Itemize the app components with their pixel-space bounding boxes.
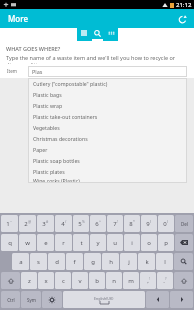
staticText: Sym xyxy=(27,297,36,303)
button[interactable]: 6 xyxy=(90,215,106,232)
button[interactable]: 2 xyxy=(19,215,36,232)
button[interactable]: i xyxy=(124,234,140,251)
staticText: Plastic wrap xyxy=(33,102,63,109)
button[interactable]: List xyxy=(77,28,90,41)
staticText: o xyxy=(147,239,151,247)
staticText: i xyxy=(131,239,133,247)
staticText: / xyxy=(65,219,67,224)
button[interactable]: Shift xyxy=(1,272,20,289)
button[interactable] xyxy=(175,234,193,251)
staticText: f xyxy=(73,258,76,266)
button[interactable]: r xyxy=(55,234,72,251)
staticText: 4 xyxy=(61,220,65,228)
staticText: t xyxy=(80,239,83,247)
button[interactable]: y xyxy=(90,234,106,251)
button[interactable]: t xyxy=(73,234,89,251)
button[interactable]: 4 xyxy=(55,215,72,232)
button[interactable]: p xyxy=(158,234,174,251)
staticText: ~ xyxy=(10,219,13,224)
button[interactable]: Ctrl xyxy=(1,291,20,308)
staticText: x xyxy=(44,277,48,285)
staticText: p xyxy=(164,239,168,247)
staticText: Vegetables xyxy=(33,124,60,131)
button[interactable]: j xyxy=(120,253,137,270)
button[interactable]: Sym xyxy=(21,291,41,308)
staticText: Ctrl xyxy=(7,297,15,303)
button[interactable]: h xyxy=(102,253,119,270)
button[interactable]: u xyxy=(107,234,123,251)
button[interactable]: k xyxy=(138,253,155,270)
staticText: e xyxy=(44,239,48,247)
staticText: ( xyxy=(150,219,152,224)
button[interactable]: Christmas decorations xyxy=(28,133,187,144)
button[interactable]: Cutlery ("compostable" plastic) xyxy=(28,78,187,89)
button[interactable]: Search xyxy=(90,28,104,41)
button[interactable]: Plastic bags xyxy=(28,89,187,100)
staticText: , xyxy=(147,277,149,285)
button[interactable]: Del xyxy=(175,215,193,232)
button[interactable]: Plastic take-out containers xyxy=(28,111,187,122)
button[interactable]: , xyxy=(140,272,156,289)
button[interactable]: Settings xyxy=(42,291,62,308)
button[interactable]: More options xyxy=(104,28,118,41)
staticText: % xyxy=(82,219,85,224)
button[interactable]: 7 xyxy=(107,215,123,232)
button[interactable]: m xyxy=(123,272,139,289)
button[interactable]: Space xyxy=(63,291,145,308)
button[interactable]: x xyxy=(38,272,54,289)
button[interactable]: f xyxy=(66,253,83,270)
button[interactable]: Vegetables xyxy=(28,122,187,133)
button[interactable]: Plastic plates xyxy=(28,166,187,177)
button[interactable]: Plastic wrap xyxy=(28,100,187,111)
staticText: @ xyxy=(28,219,32,224)
staticText: 8 xyxy=(129,220,133,228)
button[interactable]: 3 xyxy=(37,215,54,232)
staticText: 2 xyxy=(24,220,28,228)
button[interactable]: q xyxy=(1,234,18,251)
button[interactable]: Wine corks (Plastic) xyxy=(28,177,187,183)
staticText: Cutlery ("compostable" plastic) xyxy=(33,80,108,87)
button[interactable]: Left xyxy=(146,291,169,308)
button[interactable]: Right xyxy=(170,291,193,308)
staticText: 0 xyxy=(163,220,167,228)
button[interactable]: l xyxy=(156,253,173,270)
button[interactable]: o xyxy=(141,234,157,251)
staticText: Item xyxy=(7,68,17,74)
button[interactable]: . xyxy=(157,272,173,289)
button[interactable]: v xyxy=(72,272,88,289)
staticText: WHAT GOES WHERE? xyxy=(6,45,61,52)
button[interactable]: n xyxy=(106,272,122,289)
staticText: Del xyxy=(181,221,188,227)
button[interactable]: g xyxy=(84,253,101,270)
button[interactable]: Plas xyxy=(28,66,187,77)
staticText: 9 xyxy=(146,220,150,228)
button[interactable]: 0 xyxy=(158,215,174,232)
staticText: . xyxy=(163,277,165,285)
button[interactable]: b xyxy=(89,272,105,289)
button[interactable]: d xyxy=(48,253,65,270)
button[interactable]: e xyxy=(37,234,54,251)
button[interactable]: z xyxy=(21,272,37,289)
button[interactable]: 9 xyxy=(141,215,157,232)
button[interactable]: c xyxy=(55,272,71,289)
button[interactable]: s xyxy=(30,253,47,270)
button[interactable]: Paper xyxy=(28,144,187,155)
staticText: ^ xyxy=(99,219,102,224)
staticText: Wine corks (Plastic) xyxy=(33,177,80,183)
button[interactable]: Plastic soap bottles xyxy=(28,155,187,166)
staticText: 21:12 xyxy=(176,1,192,9)
staticText: l xyxy=(164,258,166,266)
staticText: Plas xyxy=(32,68,43,75)
button[interactable]: w xyxy=(19,234,36,251)
staticText: q xyxy=(8,239,12,247)
button[interactable]: 8 xyxy=(124,215,140,232)
button[interactable]: 5 xyxy=(73,215,89,232)
button[interactable]: 1 xyxy=(1,215,18,232)
staticText: 6 xyxy=(95,220,99,228)
button[interactable]: Refresh xyxy=(175,12,189,26)
button[interactable]: Shift xyxy=(174,272,193,289)
button[interactable]: a xyxy=(12,253,29,270)
staticText: y xyxy=(96,239,100,247)
button[interactable]: Search xyxy=(174,253,193,270)
staticText: 1 xyxy=(6,220,10,228)
